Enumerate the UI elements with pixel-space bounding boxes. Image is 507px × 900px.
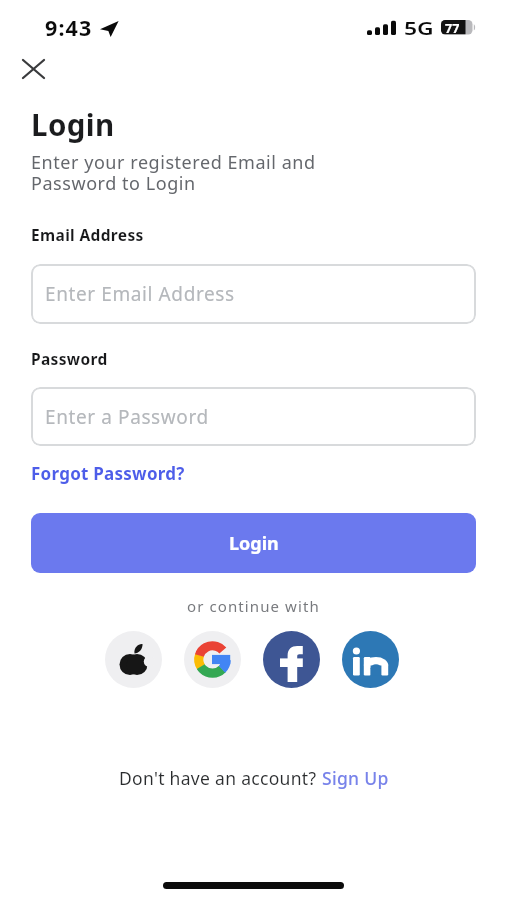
button[interactable]: Enter Email Address bbox=[31, 264, 476, 324]
button[interactable] bbox=[184, 631, 241, 688]
staticText: Enter a Password bbox=[45, 404, 209, 430]
button[interactable] bbox=[342, 631, 399, 688]
staticText: Enter Email Address bbox=[45, 281, 235, 307]
staticText: 9:43 bbox=[45, 13, 93, 42]
staticText: 77 bbox=[445, 20, 460, 37]
staticText: Login bbox=[31, 104, 115, 144]
staticText: Sign Up bbox=[322, 766, 389, 790]
staticText: or continue with bbox=[187, 596, 320, 616]
staticText: Login bbox=[229, 531, 279, 556]
button[interactable] bbox=[14, 50, 52, 88]
button[interactable] bbox=[263, 631, 320, 688]
button[interactable] bbox=[105, 631, 162, 688]
staticText: Don't have an account? bbox=[119, 766, 322, 790]
button[interactable]: Enter a Password bbox=[31, 387, 476, 446]
staticText: 5G bbox=[404, 17, 435, 40]
staticText: Forgot Password? bbox=[31, 462, 185, 485]
button[interactable]: Sign Up bbox=[322, 766, 389, 790]
button[interactable]: Login bbox=[31, 513, 476, 573]
button[interactable]: Forgot Password? bbox=[31, 462, 185, 485]
staticText: Password bbox=[31, 348, 108, 369]
staticText: Enter your registered Email and Password… bbox=[31, 150, 316, 195]
staticText: Email Address bbox=[31, 224, 144, 245]
